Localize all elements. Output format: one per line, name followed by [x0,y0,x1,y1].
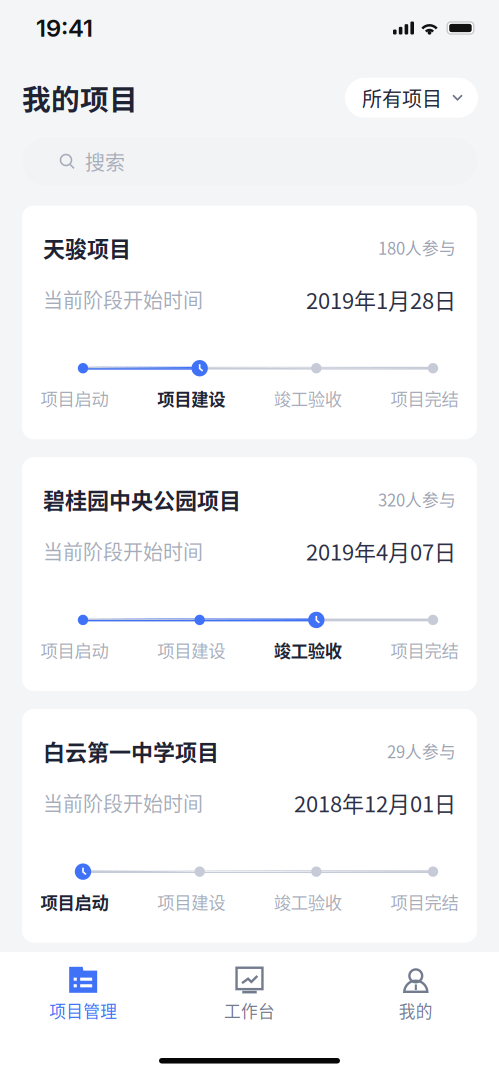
button[interactable]: 所有项目 [345,78,478,118]
staticText: 29人参与 [387,739,456,763]
staticText: 项目启动 [40,637,108,662]
staticText: 2018年12月01日 [294,787,456,819]
button[interactable]: 搜索 [0,118,499,185]
staticText: 搜索 [85,147,125,176]
staticText: 19:41 [36,13,93,42]
staticText: 当前阶段开始时间 [43,285,203,314]
staticText: 竣工验收 [274,386,342,411]
staticText: 项目建设 [157,889,225,914]
button[interactable]: 白云第一中学项目 [22,709,477,943]
staticText: 项目完结 [390,637,458,662]
staticText: 白云第一中学项目 [43,735,219,767]
staticText: 竣工验收 [274,637,342,662]
button[interactable]: 天骏项目 [22,205,477,439]
staticText: 我的项目 [22,77,138,118]
staticText: 项目管理 [49,998,117,1022]
staticText: 项目建设 [157,637,225,662]
staticText: 项目完结 [390,386,458,411]
staticText: 2019年4月07日 [306,535,456,567]
button[interactable]: 碧桂园中央公园项目 [22,457,477,691]
staticText: 180人参与 [378,235,456,259]
staticText: 当前阶段开始时间 [43,788,203,817]
button[interactable]: 项目管理 [0,947,166,1032]
staticText: 所有项目 [362,83,442,112]
staticText: 项目启动 [40,386,108,411]
staticText: 2019年1月28日 [306,283,456,315]
staticText: 项目建设 [157,386,225,411]
staticText: 碧桂园中央公园项目 [43,483,241,515]
staticText: 竣工验收 [274,889,342,914]
button[interactable]: 我的 [333,947,499,1032]
button[interactable]: 工作台 [166,947,333,1032]
staticText: 工作台 [224,998,275,1022]
staticText: 项目启动 [40,889,108,914]
staticText: 320人参与 [378,487,456,511]
staticText: 我的 [399,998,433,1022]
staticText: 天骏项目 [43,231,131,263]
staticText: 项目完结 [390,889,458,914]
staticText: 当前阶段开始时间 [43,536,203,565]
